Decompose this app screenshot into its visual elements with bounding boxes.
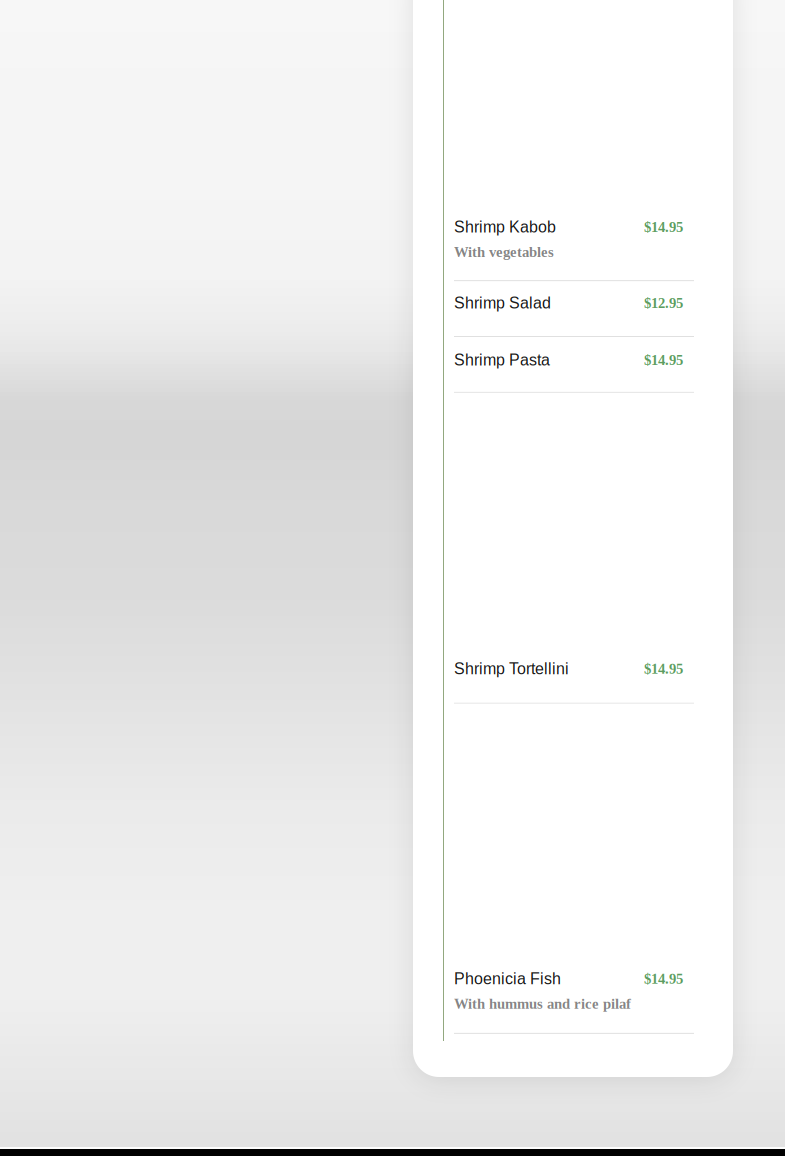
button[interactable]: Shrimp Pasta	[454, 337, 694, 393]
button[interactable]: Shrimp Kabob	[454, 218, 694, 281]
staticText: Shrimp Kabob	[454, 218, 556, 236]
staticText: $14.95	[644, 219, 683, 235]
staticText: $14.95	[644, 971, 683, 987]
staticText: Shrimp Salad	[454, 294, 551, 312]
button[interactable]: Shrimp Salad	[454, 281, 694, 337]
staticText: Phoenicia Fish	[454, 970, 561, 988]
button[interactable]: Shrimp Tortellini	[454, 393, 694, 704]
staticText: Shrimp Pasta	[454, 351, 550, 369]
staticText: With hummus and rice pilaf	[454, 996, 631, 1012]
button[interactable]: Phoenicia Fish	[454, 704, 694, 1034]
staticText: $12.95	[644, 295, 683, 311]
staticText: With vegetables	[454, 244, 554, 260]
staticText: Shrimp Tortellini	[454, 660, 569, 678]
staticText: $14.95	[644, 352, 683, 368]
staticText: $14.95	[644, 661, 683, 677]
